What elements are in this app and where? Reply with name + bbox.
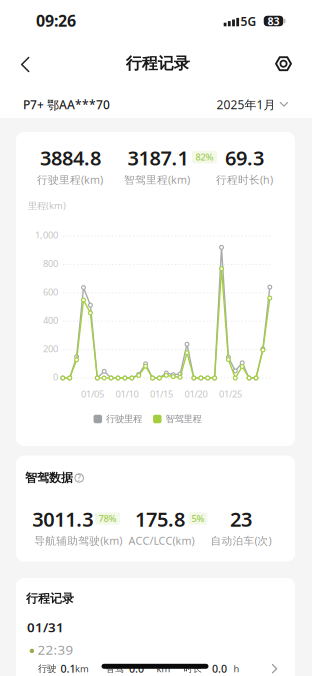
staticText: 09:26 <box>36 10 76 31</box>
staticText: 01/10 <box>115 388 138 400</box>
staticText: 200 <box>43 342 58 355</box>
staticText: 01/05 <box>81 388 104 400</box>
staticText: 01/25 <box>219 388 242 400</box>
staticText: 导航辅助驾驶(km) <box>34 533 122 548</box>
staticText: 行程时长(h) <box>216 172 273 187</box>
staticText: 智驾里程 <box>165 413 201 425</box>
staticText: 行程记录 <box>126 53 190 73</box>
staticText: 自动泊车(次) <box>210 533 271 548</box>
staticText: 3884.8 <box>40 144 101 171</box>
staticText: ACC/LCC(km) <box>128 533 194 548</box>
staticText: 800 <box>43 257 58 270</box>
staticText: 01/15 <box>150 388 173 400</box>
staticText: 23 <box>230 506 252 532</box>
button[interactable]: Trip 22:39 details <box>35 659 281 676</box>
staticText: 0 <box>53 371 58 383</box>
button[interactable]: About smart driving data <box>73 472 85 484</box>
staticText: km <box>156 662 170 675</box>
staticText: 2025年1月 <box>216 96 275 112</box>
staticText: 01/31 <box>27 618 64 636</box>
staticText: 01/20 <box>184 388 207 400</box>
staticText: P7+ 鄂AA***70 <box>23 96 110 112</box>
staticText: 83 <box>267 14 279 28</box>
staticText: 3187.1 <box>127 144 188 171</box>
staticText: h <box>233 662 239 675</box>
staticText: 0.1 <box>60 661 75 676</box>
staticText: 22:39 <box>37 641 73 658</box>
staticText: 82% <box>195 151 213 163</box>
staticText: 69.3 <box>225 144 264 171</box>
staticText: 智驾数据 <box>25 470 73 485</box>
staticText: 行驶 <box>38 663 56 674</box>
staticText: 5G <box>240 13 256 29</box>
staticText: 175.8 <box>135 506 185 532</box>
staticText: 智驾 <box>105 663 123 674</box>
staticText: 时长 <box>183 663 201 674</box>
staticText: 行驶里程 <box>106 413 142 425</box>
button[interactable]: Settings <box>268 50 298 78</box>
staticText: ? <box>77 473 81 483</box>
staticText: 里程(km) <box>28 199 66 212</box>
staticText: 600 <box>43 286 58 298</box>
button[interactable]: Select month <box>216 96 288 112</box>
staticText: 智驾里程(km) <box>124 172 190 187</box>
staticText: km <box>75 662 89 675</box>
staticText: 1,000 <box>35 229 58 241</box>
staticText: 400 <box>43 314 58 326</box>
staticText: 3011.3 <box>32 506 93 532</box>
staticText: 行驶里程(km) <box>37 172 103 187</box>
button[interactable]: Back <box>9 51 39 78</box>
staticText: 0.0 <box>212 661 227 676</box>
staticText: 78% <box>98 512 116 525</box>
staticText: 0.0 <box>129 661 144 676</box>
staticText: 5% <box>191 512 204 525</box>
staticText: 行程记录 <box>26 591 74 606</box>
